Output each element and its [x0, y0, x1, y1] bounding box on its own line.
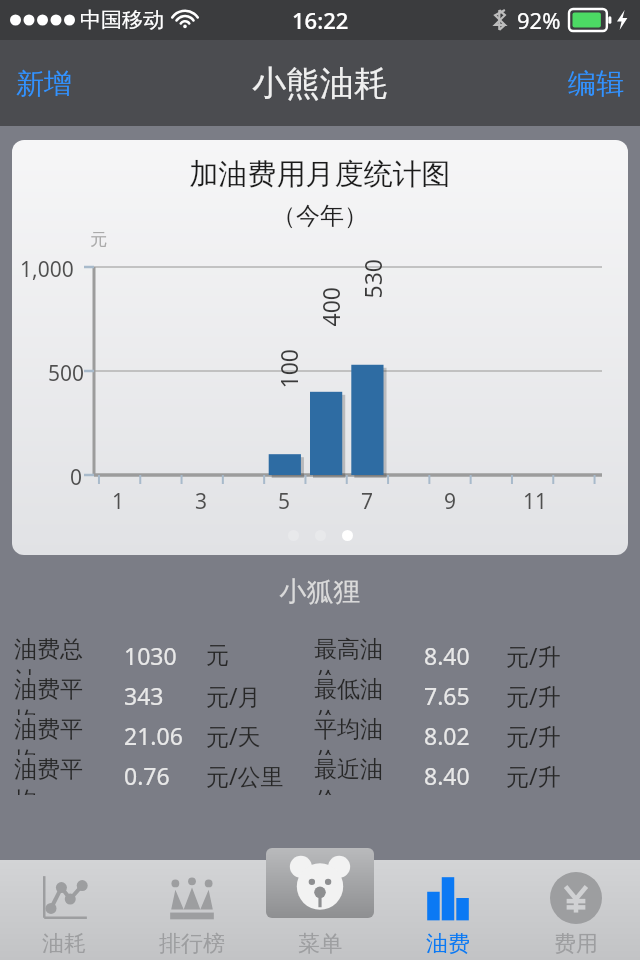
staticText: 500 — [48, 359, 85, 388]
staticText: 最近油价： — [314, 755, 424, 795]
staticText: 元/天 — [206, 720, 261, 751]
button[interactable]: 菜单 — [266, 848, 374, 918]
staticText: 元/升 — [506, 760, 561, 791]
button[interactable]: 排行榜 — [128, 860, 256, 960]
button[interactable]: 加油费用月度统计图 — [12, 140, 628, 555]
staticText: 1030 — [124, 640, 177, 671]
staticText: 最高油价： — [314, 635, 424, 675]
button[interactable]: 新增 — [0, 58, 88, 109]
staticText: 中国移动 — [80, 7, 164, 33]
staticText: 元/升 — [506, 680, 561, 711]
staticText: 油费 — [426, 930, 470, 958]
staticText: 5 — [278, 487, 291, 516]
staticText: 530 — [356, 258, 387, 298]
staticText: 7 — [361, 487, 374, 516]
staticText: 元 — [90, 229, 107, 250]
staticText: 油耗 — [42, 930, 86, 958]
staticText: 8.40 — [424, 760, 470, 791]
staticText: 油费平均： — [14, 675, 124, 715]
staticText: 1 — [112, 487, 125, 516]
staticText: 平均油价： — [314, 715, 424, 755]
staticText: 3 — [195, 487, 208, 516]
staticText: 400 — [314, 286, 345, 326]
staticText: 92% — [517, 5, 561, 35]
button[interactable]: 油费 — [384, 860, 512, 960]
staticText: 7.65 — [424, 680, 470, 711]
staticText: 新增 — [16, 66, 72, 101]
staticText: 油费平均： — [14, 755, 124, 795]
staticText: 0.76 — [124, 760, 170, 791]
staticText: 8.02 — [424, 720, 470, 751]
button[interactable]: 油耗 — [0, 860, 128, 960]
staticText: 16:22 — [292, 5, 349, 35]
staticText: 元/升 — [506, 720, 561, 751]
staticText: 元/月 — [206, 680, 261, 711]
staticText: 菜单 — [298, 930, 342, 958]
staticText: 编辑 — [568, 66, 624, 101]
staticText: 小熊油耗 — [252, 62, 388, 105]
staticText: 343 — [124, 680, 164, 711]
staticText: 油费平均： — [14, 715, 124, 755]
button[interactable]: 费用 — [512, 860, 640, 960]
staticText: 9 — [444, 487, 457, 516]
button[interactable]: 菜单 — [256, 860, 384, 960]
staticText: 排行榜 — [159, 930, 225, 958]
button[interactable]: 编辑 — [552, 58, 640, 109]
staticText: 元/升 — [506, 640, 561, 671]
staticText: 加油费用月度统计图 — [12, 156, 628, 193]
staticText: 小狐狸 — [0, 575, 640, 609]
staticText: 0 — [70, 463, 83, 492]
staticText: 费用 — [554, 930, 598, 958]
staticText: 1,000 — [20, 255, 74, 284]
staticText: 100 — [272, 348, 303, 388]
staticText: （今年） — [12, 201, 628, 231]
staticText: 油费总计： — [14, 635, 124, 675]
staticText: 元 — [206, 641, 229, 670]
staticText: 元/公里 — [206, 760, 284, 791]
staticText: 11 — [523, 487, 548, 516]
staticText: 最低油价： — [314, 675, 424, 715]
staticText: 21.06 — [124, 720, 183, 751]
staticText: 8.40 — [424, 640, 470, 671]
